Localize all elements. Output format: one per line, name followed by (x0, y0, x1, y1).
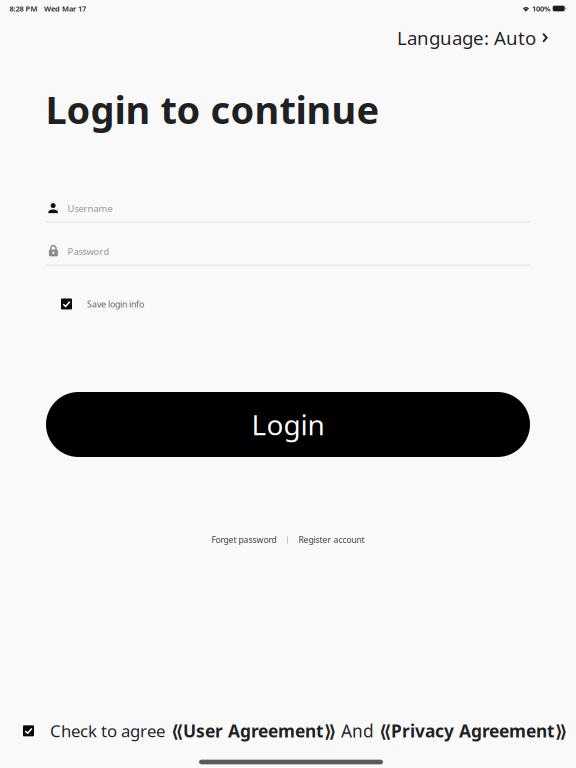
staticText: Language: Auto (397, 25, 536, 50)
button[interactable]: Password (46, 237, 530, 265)
staticText: Save login info (87, 298, 144, 310)
staticText: Check to agree (50, 719, 165, 742)
staticText: 8:28 PM (9, 3, 37, 14)
staticText: And (336, 719, 379, 743)
staticText: Login (251, 405, 324, 443)
staticText: ⟪Privacy Agreement⟫ (379, 719, 567, 743)
staticText: Wed Mar 17 (44, 3, 86, 14)
staticText: Username (67, 202, 112, 215)
button[interactable]: Register account (295, 529, 367, 551)
button[interactable]: Forget password (208, 529, 279, 551)
staticText: Forget password (211, 534, 276, 546)
button[interactable]: Username (46, 194, 530, 222)
button[interactable]: Check to agree (23, 719, 165, 742)
staticText: 100% (532, 3, 551, 14)
staticText: Register account (298, 534, 364, 546)
button[interactable]: ⟪Privacy Agreement⟫ (379, 719, 567, 743)
staticText: Login to continue (45, 83, 379, 135)
button[interactable]: Login (46, 392, 530, 457)
staticText: ⟪User Agreement⟫ (171, 719, 336, 743)
button[interactable]: ⟪User Agreement⟫ (165, 719, 336, 743)
button[interactable]: Save login info (58, 292, 147, 316)
staticText: Password (67, 245, 109, 258)
button[interactable]: Language: Auto (393, 18, 552, 57)
